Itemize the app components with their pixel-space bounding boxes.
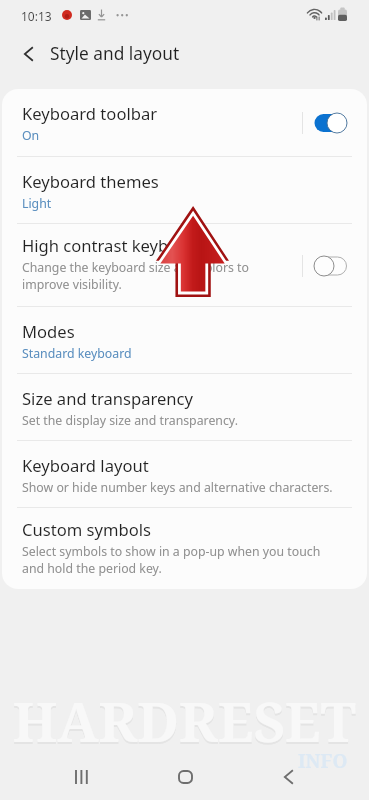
staticText: Keyboard layout bbox=[22, 454, 149, 477]
button[interactable]: Keyboard toolbar bbox=[2, 89, 367, 156]
button[interactable]: Recent apps bbox=[58, 758, 104, 796]
button[interactable]: Custom symbols bbox=[2, 508, 367, 589]
staticText: 10:13 bbox=[21, 8, 52, 24]
button[interactable]: Size and transparency bbox=[2, 374, 367, 441]
staticText: Standard keyboard bbox=[22, 345, 132, 362]
button[interactable]: Keyboard layout bbox=[2, 441, 367, 508]
button[interactable]: Keyboard themes bbox=[2, 157, 367, 224]
button[interactable]: High contrast keyboard bbox=[2, 224, 367, 307]
button[interactable]: Back bbox=[265, 758, 311, 796]
staticText: Select symbols to show in a pop-up when … bbox=[22, 543, 321, 576]
staticText: Custom symbols bbox=[22, 518, 151, 541]
staticText: Keyboard themes bbox=[22, 170, 159, 193]
staticText: Show or hide number keys and alternative… bbox=[22, 479, 333, 496]
staticText: Keyboard toolbar bbox=[22, 102, 158, 125]
staticText: Set the display size and transparency. bbox=[22, 412, 238, 429]
staticText: Change the keyboard size and colors to i… bbox=[22, 259, 249, 292]
button[interactable]: Toggle off bbox=[313, 255, 349, 277]
staticText: Style and layout bbox=[50, 42, 180, 66]
button[interactable]: Home bbox=[162, 758, 208, 796]
button[interactable]: Modes bbox=[2, 307, 367, 374]
staticText: Modes bbox=[22, 320, 75, 343]
button[interactable]: Back bbox=[14, 40, 42, 68]
staticText: On bbox=[22, 127, 40, 144]
staticText: INFO bbox=[298, 748, 348, 774]
staticText: High contrast keyboard bbox=[22, 234, 205, 257]
staticText: HARDRESET bbox=[0, 686, 369, 760]
staticText: Size and transparency bbox=[22, 387, 194, 410]
staticText: Light bbox=[22, 195, 52, 212]
button[interactable]: Toggle on bbox=[313, 112, 349, 134]
staticText: HARDRESET bbox=[0, 684, 369, 758]
